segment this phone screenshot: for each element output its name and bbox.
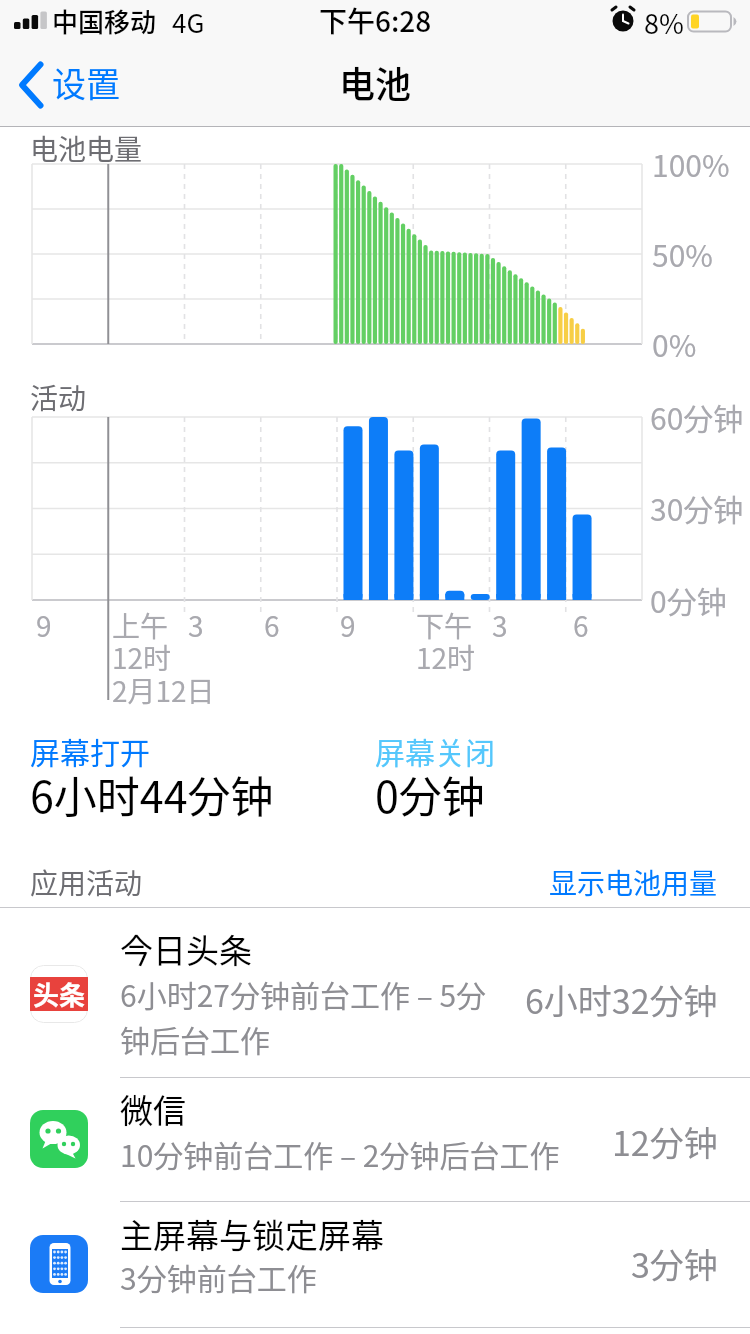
staticText: 3分钟前台工作: [120, 1255, 317, 1298]
staticText: 9: [340, 605, 356, 646]
button[interactable]: [0, 1078, 750, 1201]
staticText: 12分钟: [612, 1117, 718, 1166]
staticText: 活动: [30, 377, 87, 418]
staticText: 3: [492, 605, 508, 646]
staticText: 屏幕打开: [30, 729, 150, 772]
staticText: 3: [188, 605, 204, 646]
staticText: 显示电池用量: [549, 862, 718, 903]
staticText: 8%: [644, 3, 684, 42]
staticText: 10分钟前台工作 – 2分钟后台工作: [120, 1132, 560, 1175]
staticText: 应用活动: [30, 862, 143, 903]
staticText: 100%: [652, 142, 730, 185]
staticText: 30分钟: [650, 486, 744, 529]
staticText: 6小时27分钟前台工作 – 5分: [120, 972, 487, 1015]
staticText: 6: [264, 605, 280, 646]
staticText: 2月12日: [112, 670, 215, 711]
staticText: 今日头条: [120, 925, 252, 973]
staticText: 4G: [172, 3, 205, 41]
staticText: 设置: [52, 58, 120, 107]
button[interactable]: [10, 56, 140, 116]
staticText: 微信: [120, 1085, 186, 1133]
staticText: 上午: [112, 605, 169, 646]
staticText: 电池: [339, 56, 412, 108]
staticText: 6: [573, 605, 589, 646]
staticText: 中国移动: [52, 2, 157, 40]
staticText: 6小时44分钟: [30, 763, 274, 825]
staticText: 50%: [652, 232, 713, 275]
button[interactable]: [0, 1202, 750, 1327]
staticText: 0分钟: [650, 578, 727, 621]
button[interactable]: 显示电池用量: [418, 862, 718, 903]
staticText: 0%: [652, 322, 697, 365]
staticText: 头条: [33, 975, 86, 1013]
staticText: 12时: [416, 637, 476, 678]
staticText: 屏幕关闭: [375, 729, 495, 772]
staticText: 9: [36, 605, 52, 646]
staticText: 3分钟: [631, 1239, 718, 1288]
staticText: 电池电量: [30, 128, 143, 169]
staticText: 下午6:28: [319, 0, 432, 41]
staticText: 60分钟: [650, 395, 744, 438]
staticText: 钟后台工作: [120, 1017, 270, 1060]
staticText: 下午: [416, 605, 473, 646]
staticText: 6小时32分钟: [525, 975, 718, 1024]
button[interactable]: [0, 908, 750, 1077]
staticText: 0分钟: [375, 763, 485, 825]
staticText: 主屏幕与锁定屏幕: [120, 1210, 384, 1258]
staticText: 12时: [112, 637, 172, 678]
